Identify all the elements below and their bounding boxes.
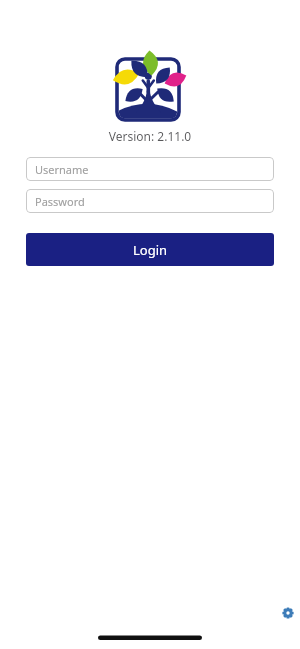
staticText: Version: 2.11.0 [0,128,300,144]
button[interactable] [277,602,299,624]
button[interactable]: Password [26,189,274,213]
button[interactable]: Login [26,233,274,266]
staticText: Login [133,241,168,259]
button[interactable]: Username [26,157,274,181]
staticText: Username [35,162,89,177]
staticText: Password [35,194,85,209]
